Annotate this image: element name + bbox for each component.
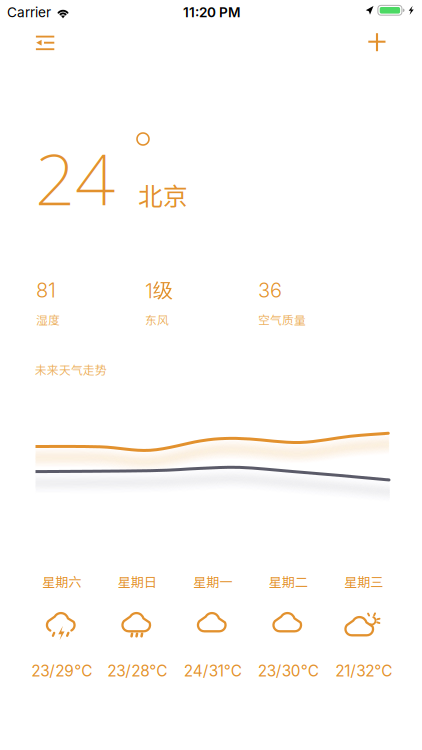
staticText: 星期六 (42, 572, 81, 591)
staticText: 星期一 (193, 572, 232, 591)
staticText: Carrier (7, 4, 51, 20)
staticText: 24/31°C (184, 662, 242, 680)
staticText: 湿度 (36, 311, 60, 328)
staticText: 东风 (145, 311, 169, 328)
staticText: 星期日 (118, 572, 157, 591)
staticText: 星期三 (344, 572, 383, 591)
staticText: 23/30°C (258, 662, 319, 680)
staticText: 11:20 PM (183, 4, 241, 20)
staticText: 21/32°C (335, 662, 392, 680)
button[interactable]: 星期六 (24, 570, 99, 682)
staticText: 24 (35, 131, 115, 225)
button[interactable]: 星期一 (175, 570, 250, 682)
button[interactable]: 星期日 (99, 570, 175, 682)
staticText: 36 (258, 278, 282, 302)
staticText: 1级 (145, 278, 173, 303)
staticText: 星期二 (269, 572, 308, 591)
staticText: 81 (36, 278, 56, 302)
button[interactable]: 星期二 (250, 570, 326, 682)
staticText: 空气质量 (258, 311, 306, 328)
button[interactable]: 星期三 (326, 570, 401, 682)
button[interactable]: Cities list (25, 25, 65, 61)
staticText: 未来天气走势 (35, 361, 107, 378)
staticText: 23/29°C (31, 662, 92, 680)
button[interactable]: Add city (357, 22, 396, 62)
staticText: 北京 (138, 177, 188, 213)
staticText: 23/28°C (107, 662, 167, 680)
